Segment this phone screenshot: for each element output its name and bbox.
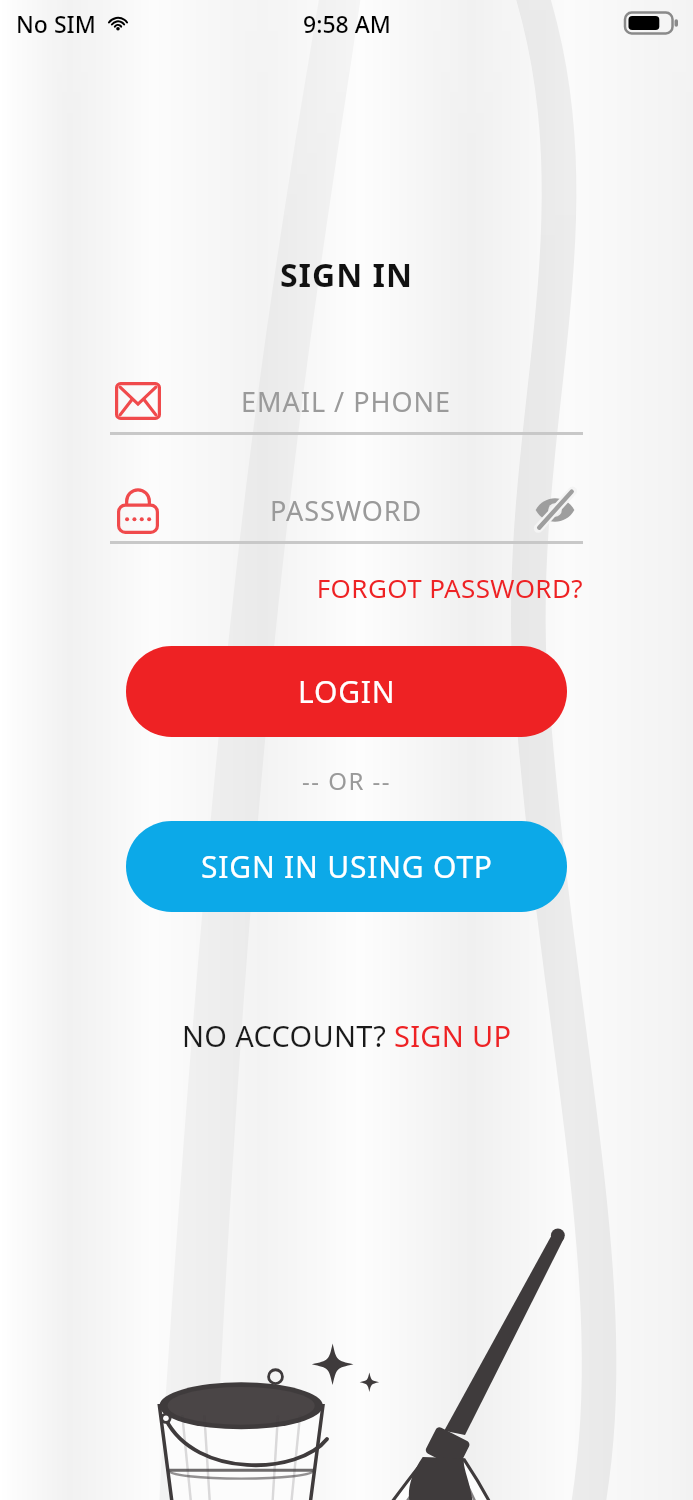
staticText: EMAIL / PHONE xyxy=(241,383,452,420)
button[interactable]: SIGN IN USING OTP xyxy=(126,821,567,912)
staticText: NO ACCOUNT? xyxy=(182,1016,394,1055)
button[interactable]: PASSWORD xyxy=(0,479,693,544)
staticText: No SIM xyxy=(16,8,96,39)
staticText: 9:58 AM xyxy=(303,8,391,39)
staticText: PASSWORD xyxy=(270,492,423,529)
button[interactable]: Show password xyxy=(531,486,579,534)
button[interactable]: SIGN UP xyxy=(394,1016,512,1055)
staticText: SIGN UP xyxy=(394,1016,512,1055)
staticText: FORGOT PASSWORD? xyxy=(0,570,583,605)
staticText: SIGN IN USING OTP xyxy=(201,846,493,887)
button[interactable]: EMAIL / PHONE xyxy=(0,370,693,435)
staticText: -- OR -- xyxy=(0,764,693,797)
button[interactable]: LOGIN xyxy=(126,646,567,737)
button[interactable]: FORGOT PASSWORD? xyxy=(0,570,583,605)
staticText: SIGN IN xyxy=(0,253,693,297)
staticText: LOGIN xyxy=(298,671,396,712)
